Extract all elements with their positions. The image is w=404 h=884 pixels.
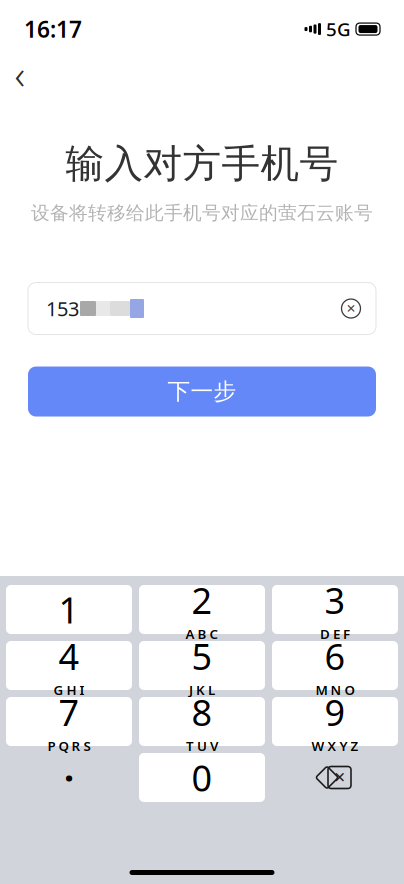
staticText: P Q R S — [47, 737, 90, 755]
button[interactable]: Decimal point — [6, 753, 132, 802]
staticText: 输入对方手机号 — [65, 140, 338, 188]
button[interactable]: Clear text — [334, 291, 368, 325]
staticText: T U V — [186, 737, 218, 755]
button[interactable]: 1 — [6, 585, 132, 634]
staticText: 6 — [324, 632, 345, 680]
staticText: 2 — [191, 576, 212, 624]
button[interactable]: Delete — [272, 753, 398, 802]
staticText: 7 — [58, 688, 79, 736]
staticText: ‹ — [14, 47, 25, 101]
staticText: 5 — [191, 632, 212, 680]
staticText: 8 — [191, 688, 212, 736]
button[interactable]: 7 — [6, 697, 132, 746]
staticText: A B C — [185, 625, 218, 643]
staticText: W X Y Z — [311, 737, 358, 755]
staticText: J K L — [189, 681, 215, 699]
staticText: 0 — [191, 754, 212, 801]
staticText: 设备将转移给此手机号对应的萤石云账号 — [31, 202, 373, 224]
staticText: 153 — [46, 295, 79, 322]
staticText: G H I — [53, 681, 84, 699]
button[interactable]: 4 — [6, 641, 132, 690]
button[interactable]: Back — [0, 54, 40, 94]
staticText: 3 — [324, 576, 345, 624]
button[interactable]: 6 — [272, 641, 398, 690]
staticText: 5G — [326, 17, 351, 41]
staticText: 1 — [58, 586, 79, 633]
button[interactable]: 下一步 — [28, 366, 376, 416]
staticText: ✕ — [346, 302, 356, 315]
staticText: ✕ — [333, 769, 345, 786]
staticText: D E F — [320, 625, 350, 643]
staticText: 下一步 — [167, 378, 236, 405]
button[interactable]: 0 — [139, 753, 265, 802]
button[interactable]: 5 — [139, 641, 265, 690]
button[interactable]: 2 — [139, 585, 265, 634]
staticText: 16:17 — [24, 14, 82, 44]
staticText: 9 — [324, 688, 345, 736]
button[interactable]: 3 — [272, 585, 398, 634]
staticText: · — [64, 754, 74, 801]
button[interactable]: 9 — [272, 697, 398, 746]
staticText: M N O — [315, 681, 354, 699]
button[interactable]: 8 — [139, 697, 265, 746]
staticText: 4 — [58, 632, 79, 680]
